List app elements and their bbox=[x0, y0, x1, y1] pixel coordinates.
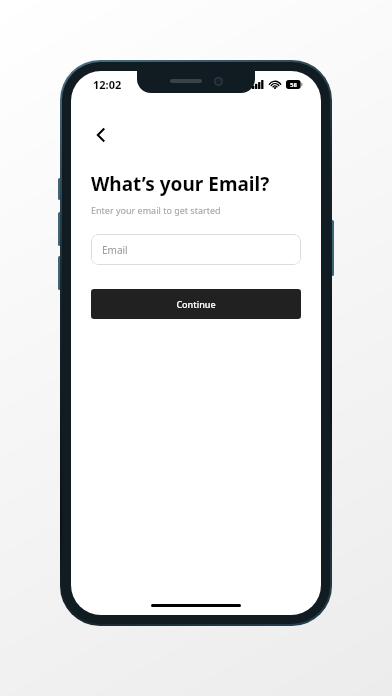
staticText: What’s your Email? bbox=[91, 171, 270, 197]
staticText: 58 bbox=[290, 81, 297, 89]
staticText: Continue bbox=[176, 298, 216, 310]
staticText: 12:02 bbox=[93, 77, 122, 92]
staticText: Enter your email to get started bbox=[91, 204, 221, 216]
staticText: Email bbox=[102, 243, 128, 257]
button[interactable]: Back bbox=[81, 115, 121, 155]
button[interactable]: Continue bbox=[91, 289, 301, 319]
button[interactable]: Email bbox=[91, 234, 301, 265]
